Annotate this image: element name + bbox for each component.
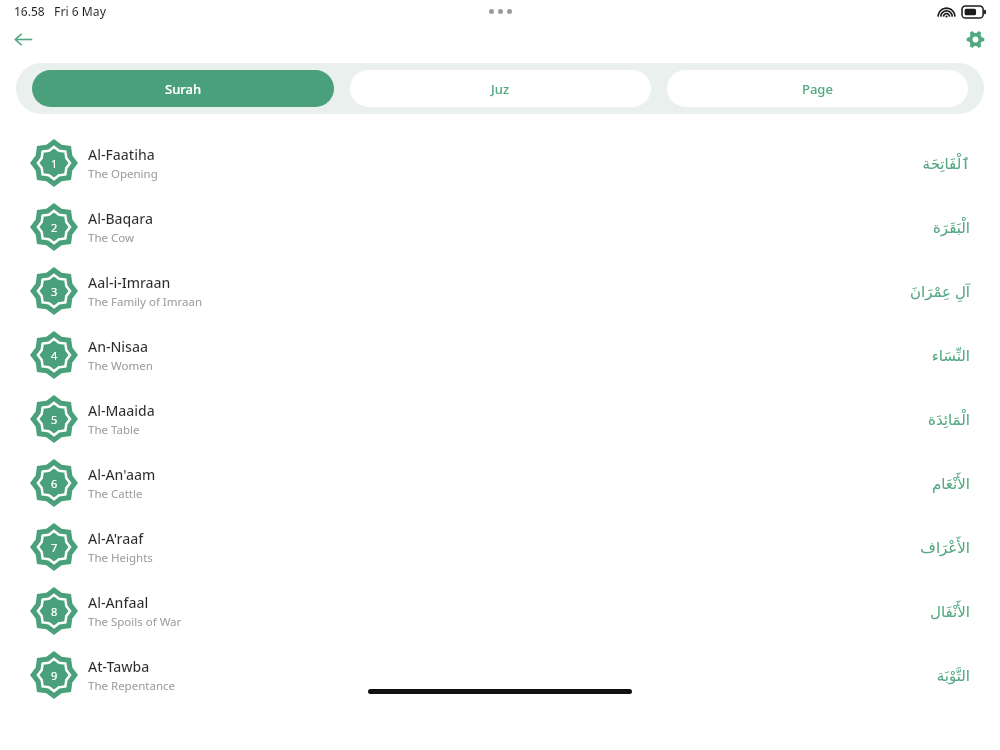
button[interactable]: 4 (0, 323, 1000, 387)
staticText: التَّوْبَة (936, 667, 970, 684)
staticText: Al-Faatiha (88, 145, 155, 164)
staticText: ٱلْفَاتِحَة (922, 155, 970, 172)
button[interactable]: 9 (0, 643, 1000, 707)
staticText: الْمَائِدَة (928, 411, 970, 428)
button[interactable]: 6 (0, 451, 1000, 515)
staticText: الأَنْعَام (932, 475, 970, 492)
staticText: النِّسَاء (931, 347, 970, 364)
button[interactable]: 2 (0, 195, 1000, 259)
staticText: At-Tawba (88, 657, 150, 676)
staticText: The Heights (88, 550, 153, 566)
staticText: The Women (88, 358, 153, 374)
staticText: آلِ عِمْرَانَ (909, 281, 970, 301)
staticText: Al-A'raaf (88, 529, 144, 548)
staticText: 5 (51, 412, 58, 427)
staticText: 16.58 Fri 6 May (14, 3, 107, 19)
staticText: The Family of Imraan (88, 294, 203, 310)
staticText: 3 (51, 284, 58, 299)
button[interactable]: 3 (0, 259, 1000, 323)
button[interactable]: 5 (0, 387, 1000, 451)
staticText: Surah (165, 80, 202, 98)
staticText: Al-An'aam (88, 465, 156, 484)
staticText: Page (802, 80, 833, 98)
staticText: The Repentance (88, 678, 175, 694)
button[interactable]: 7 (0, 515, 1000, 579)
staticText: 1 (51, 156, 58, 171)
staticText: Juz (491, 80, 510, 98)
button[interactable]: Surah (32, 70, 334, 107)
staticText: 9 (51, 668, 58, 683)
staticText: 2 (51, 220, 58, 235)
staticText: Aal-i-Imraan (88, 273, 171, 292)
staticText: 4 (51, 348, 58, 363)
button[interactable]: 1 (0, 131, 1000, 195)
staticText: The Table (88, 422, 140, 438)
button[interactable]: 8 (0, 579, 1000, 643)
staticText: 8 (51, 604, 58, 619)
staticText: The Spoils of War (88, 614, 182, 630)
staticText: Al-Anfaal (88, 593, 149, 612)
button[interactable]: Back (6, 22, 40, 56)
staticText: The Opening (88, 166, 158, 182)
staticText: Al-Baqara (88, 209, 153, 228)
button[interactable]: Page (667, 70, 968, 107)
staticText: The Cattle (88, 486, 143, 502)
staticText: الْبَقَرَة (933, 219, 970, 236)
button[interactable]: Settings (958, 22, 992, 56)
staticText: الأَعْرَاف (920, 539, 970, 556)
staticText: 7 (51, 540, 58, 555)
staticText: The Cow (88, 230, 135, 246)
button[interactable]: Juz (350, 70, 651, 107)
staticText: 6 (51, 476, 58, 491)
staticText: الأَنْفَال (930, 603, 970, 620)
staticText: An-Nisaa (88, 337, 148, 356)
staticText: Al-Maaida (88, 401, 155, 420)
